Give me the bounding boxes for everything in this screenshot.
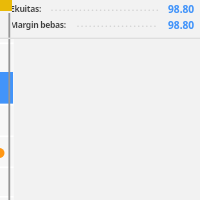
- staticText: 98.80: [168, 18, 195, 32]
- staticText: Margin bebas:: [12, 19, 66, 31]
- staticText: Ekuitas:: [12, 3, 41, 15]
- staticText: 98.80: [168, 2, 195, 16]
